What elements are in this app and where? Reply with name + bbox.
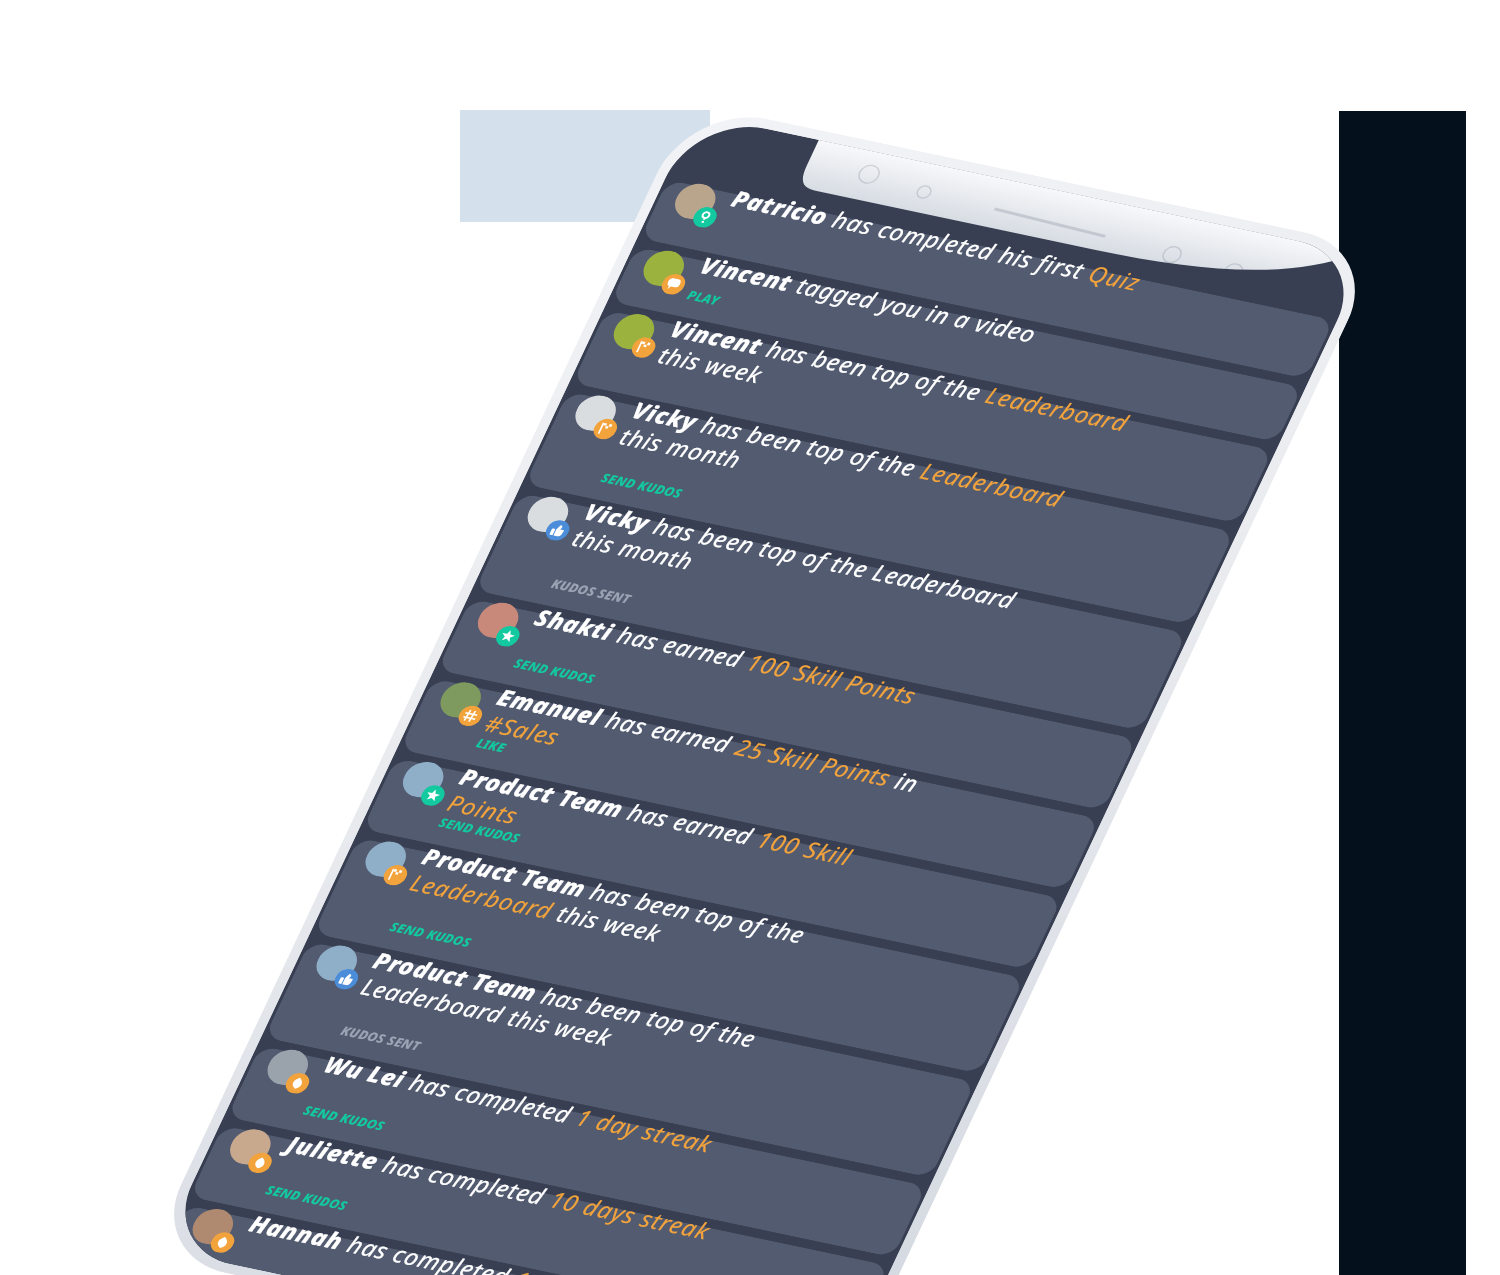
staticText: Vincent has been top of the Leaderboard …: [636, 149, 1156, 630]
staticText: PLAY: [679, 275, 728, 320]
staticText: SEND KUDOS: [296, 1073, 394, 1163]
button[interactable]: Patricio has completed his first Quiz: [613, 0, 1358, 628]
staticText: SEND KUDOS: [506, 626, 604, 716]
staticText: Patricio has completed his first Quiz: [718, 19, 1209, 473]
button[interactable]: SEND KUDOS: [406, 358, 1164, 1059]
staticText: Vicky has been top of the Leaderboard th…: [550, 332, 1070, 812]
button[interactable]: SEND KUDOS: [147, 964, 869, 1275]
button[interactable]: SEND KUDOS: [196, 805, 954, 1275]
staticText: SEND KUDOS: [230, 1232, 315, 1275]
button[interactable]: KUDOS SENT: [435, 252, 1222, 980]
staticText: Product Team has been top of the Leaderb…: [388, 677, 908, 1157]
staticText: Wu Lei has completed 1 day streak: [310, 885, 802, 1275]
staticText: KUDOS SENT: [543, 547, 639, 636]
staticText: Hannah has completed 10 days streak: [236, 1044, 727, 1275]
staticText: Emanuel has earned 25 Skill Points in #S…: [463, 517, 983, 998]
staticText: LIKE: [468, 724, 514, 766]
staticText: SEND KUDOS: [593, 440, 691, 531]
button[interactable]: LIKE: [368, 438, 1127, 1139]
staticText: Product Team has earned 100 Skill Points: [426, 597, 945, 1077]
staticText: SEND KUDOS: [258, 1152, 356, 1243]
button[interactable]: Vincent has been top of the Leaderboard …: [540, 69, 1301, 772]
staticText: SEND KUDOS: [431, 785, 529, 875]
button[interactable]: SEND KUDOS: [275, 597, 1059, 1275]
staticText: Juliette has completed 10 days streak: [273, 964, 764, 1275]
button[interactable]: KUDOS SENT: [226, 701, 1010, 1275]
staticText: Shakti has earned 100 Skill Points: [521, 438, 1012, 892]
button[interactable]: SEND KUDOS: [158, 885, 917, 1275]
button[interactable]: PLAY: [584, 6, 1325, 691]
staticText: Vicky has been top of the Leaderboard th…: [598, 231, 1118, 711]
staticText: SEND KUDOS: [382, 889, 480, 980]
staticText: KUDOS SENT: [333, 994, 429, 1083]
button[interactable]: SEND KUDOS: [487, 151, 1268, 874]
staticText: Product Team has been top of the Leaderb…: [339, 781, 859, 1261]
staticText: Vincent tagged you in a video: [686, 86, 1178, 540]
button[interactable]: SEND KUDOS: [331, 517, 1089, 1218]
